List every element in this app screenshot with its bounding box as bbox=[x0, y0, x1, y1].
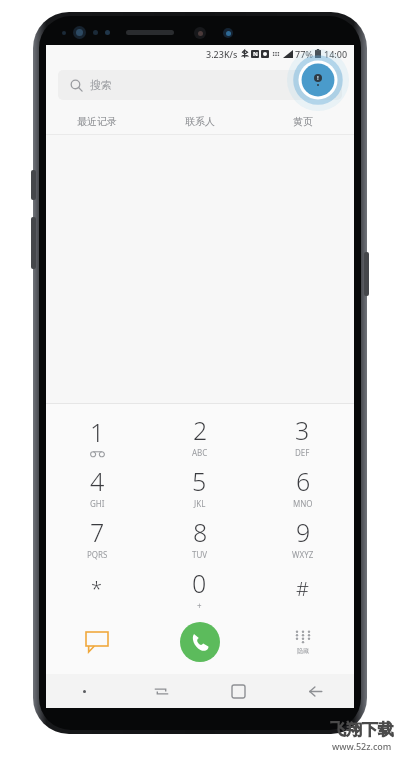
staticText: # bbox=[296, 575, 309, 602]
staticText: 5 bbox=[192, 464, 207, 498]
button[interactable]: 搜索 bbox=[58, 70, 342, 100]
button[interactable]: Recents bbox=[123, 674, 200, 708]
button[interactable]: 3 bbox=[251, 410, 354, 461]
staticText: 隐藏 bbox=[297, 647, 309, 655]
staticText: GHI bbox=[90, 498, 105, 509]
staticText: + bbox=[197, 600, 202, 611]
staticText: 3 bbox=[295, 413, 310, 447]
staticText: 4 bbox=[90, 464, 105, 498]
button[interactable]: 6 bbox=[251, 461, 354, 512]
button[interactable]: 黄页 bbox=[251, 108, 354, 134]
staticText: 0 bbox=[192, 566, 207, 600]
staticText: WXYZ bbox=[292, 549, 314, 560]
button[interactable]: Call bbox=[148, 614, 251, 670]
button[interactable]: Send message bbox=[46, 614, 148, 670]
staticText: DEF bbox=[295, 447, 310, 458]
staticText: 飞翔下载 bbox=[330, 720, 394, 740]
button[interactable]: 联系人 bbox=[148, 108, 251, 134]
staticText: www.52z.com bbox=[332, 740, 392, 752]
staticText: * bbox=[91, 575, 103, 602]
button[interactable]: 5 bbox=[148, 461, 251, 512]
button[interactable]: More options bbox=[287, 49, 349, 111]
staticText: PQRS bbox=[87, 549, 108, 560]
staticText: JKL bbox=[194, 498, 206, 509]
button[interactable]: 0 bbox=[148, 563, 251, 614]
staticText: 3.23K/s bbox=[206, 48, 238, 60]
button[interactable]: 8 bbox=[148, 512, 251, 563]
button[interactable]: 2 bbox=[148, 410, 251, 461]
staticText: 联系人 bbox=[185, 115, 215, 128]
staticText: 77% bbox=[295, 48, 313, 60]
staticText: 2 bbox=[193, 413, 208, 447]
button[interactable]: Menu dot bbox=[46, 674, 123, 708]
button[interactable]: * bbox=[46, 563, 148, 614]
button[interactable]: 1 bbox=[46, 410, 148, 461]
button[interactable]: # bbox=[251, 563, 354, 614]
staticText: TUV bbox=[192, 549, 208, 560]
button[interactable]: Hide keypad bbox=[251, 614, 354, 670]
staticText: 黄页 bbox=[293, 115, 313, 128]
staticText: 14:00 bbox=[324, 48, 348, 60]
staticText: 9 bbox=[296, 515, 311, 549]
button[interactable]: 9 bbox=[251, 512, 354, 563]
button[interactable]: 7 bbox=[46, 512, 148, 563]
staticText: 最近记录 bbox=[77, 115, 117, 128]
staticText: 6 bbox=[296, 464, 311, 498]
staticText: 搜索 bbox=[90, 78, 112, 92]
staticText: MNO bbox=[293, 498, 313, 509]
button[interactable]: 4 bbox=[46, 461, 148, 512]
button[interactable]: 最近记录 bbox=[46, 108, 148, 134]
staticText: N bbox=[253, 50, 258, 58]
staticText: 7 bbox=[90, 515, 105, 549]
staticText: ! bbox=[317, 74, 319, 82]
button[interactable]: Back bbox=[277, 674, 354, 708]
staticText: 1 bbox=[90, 415, 105, 449]
staticText: 8 bbox=[193, 515, 208, 549]
button[interactable]: Home bbox=[200, 674, 277, 708]
staticText: ABC bbox=[192, 447, 208, 458]
